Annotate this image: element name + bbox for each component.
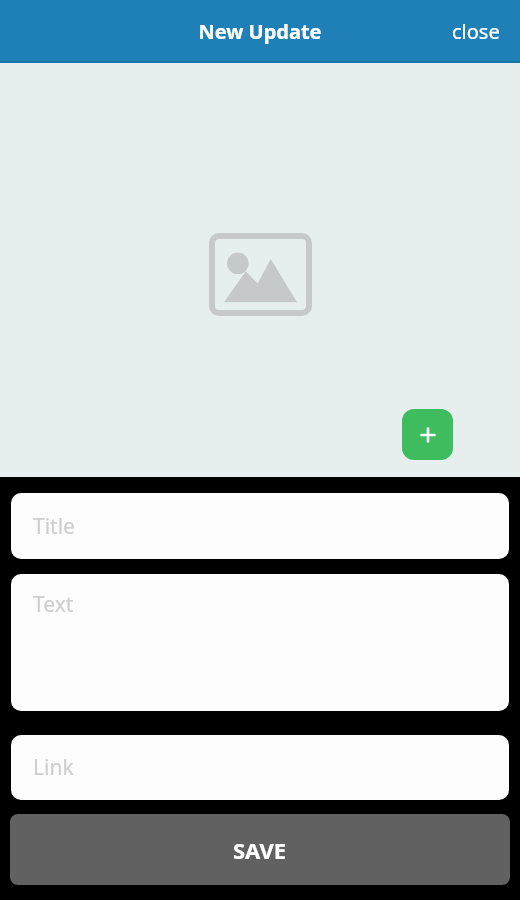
button[interactable]: Link bbox=[11, 735, 509, 800]
staticText: SAVE bbox=[233, 835, 287, 865]
staticText: Title bbox=[33, 512, 75, 541]
button[interactable]: Add image bbox=[402, 409, 453, 460]
staticText: Link bbox=[33, 753, 74, 782]
button[interactable]: SAVE bbox=[10, 814, 510, 885]
staticText: New Update bbox=[0, 18, 520, 45]
button[interactable]: Add photo bbox=[209, 233, 312, 316]
button[interactable]: Title bbox=[11, 493, 509, 559]
button[interactable]: close bbox=[432, 4, 520, 59]
staticText: close bbox=[452, 18, 500, 45]
button[interactable]: Text bbox=[11, 574, 509, 711]
staticText: Text bbox=[33, 590, 74, 619]
